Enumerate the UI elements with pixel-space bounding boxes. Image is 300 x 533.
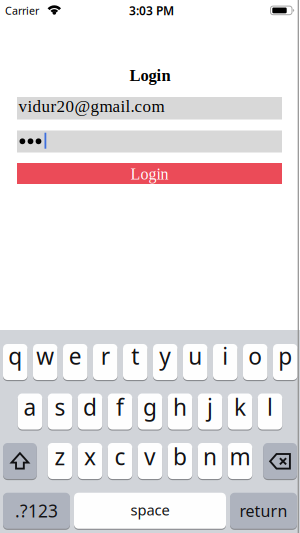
button[interactable]: i [213, 343, 237, 381]
button[interactable]: u [183, 343, 207, 381]
staticText: r [101, 341, 110, 371]
button[interactable]: a [18, 392, 42, 430]
staticText: v [144, 441, 156, 471]
staticText: y [159, 341, 171, 371]
button[interactable]: s [48, 392, 72, 430]
staticText: return [239, 500, 287, 521]
staticText: a [23, 392, 36, 422]
staticText: 3:03 PM [129, 3, 174, 19]
staticText: vidur20@gmail.com [18, 97, 164, 116]
button[interactable]: space [74, 492, 226, 530]
button[interactable]: b [168, 442, 192, 480]
staticText: Carrier [5, 4, 39, 18]
staticText: Login [129, 66, 170, 85]
staticText: u [188, 341, 202, 371]
staticText: b [173, 441, 187, 471]
staticText: m [229, 441, 250, 471]
staticText: n [203, 441, 217, 471]
button[interactable]: z [48, 442, 72, 480]
button[interactable]: f [108, 392, 132, 430]
button[interactable]: j [198, 392, 222, 430]
staticText: e [69, 341, 82, 371]
button[interactable]: n [198, 442, 222, 480]
staticText: h [173, 392, 187, 422]
staticText: p [278, 341, 292, 371]
staticText: .?123 [15, 499, 58, 522]
staticText: t [131, 341, 139, 371]
button[interactable]: p [273, 343, 297, 381]
button[interactable]: q [3, 343, 27, 381]
staticText: g [143, 392, 157, 422]
button[interactable]: o [243, 343, 267, 381]
button[interactable]: Delete [263, 442, 297, 480]
button[interactable]: h [168, 392, 192, 430]
button[interactable]: l [258, 392, 282, 430]
button[interactable]: .?123 [3, 492, 70, 530]
staticText: d [83, 392, 97, 422]
staticText: i [222, 341, 228, 371]
staticText: q [8, 341, 22, 371]
button[interactable]: g [138, 392, 162, 430]
staticText: k [234, 392, 246, 422]
button[interactable]: Login [17, 163, 282, 184]
button[interactable]: t [123, 343, 147, 381]
button[interactable]: Shift [3, 442, 37, 480]
staticText: x [84, 441, 96, 471]
staticText: l [267, 392, 273, 422]
button[interactable]: return [230, 492, 297, 530]
button[interactable]: w [33, 343, 57, 381]
staticText: f [116, 392, 124, 422]
button[interactable]: r [93, 343, 117, 381]
button[interactable]: vidur20@gmail.com [17, 97, 282, 119]
button[interactable]: y [153, 343, 177, 381]
staticText: w [36, 341, 54, 371]
button[interactable]: m [228, 442, 252, 480]
staticText: s [54, 392, 65, 422]
button[interactable]: x [78, 442, 102, 480]
button[interactable]: Password [17, 130, 282, 152]
button[interactable]: c [108, 442, 132, 480]
staticText: o [248, 341, 262, 371]
staticText: space [130, 500, 169, 519]
staticText: c [114, 441, 125, 471]
button[interactable]: v [138, 442, 162, 480]
staticText: z [54, 441, 65, 471]
staticText: Login [130, 165, 168, 183]
button[interactable]: d [78, 392, 102, 430]
button[interactable]: e [63, 343, 87, 381]
button[interactable]: k [228, 392, 252, 430]
staticText: j [207, 392, 213, 422]
